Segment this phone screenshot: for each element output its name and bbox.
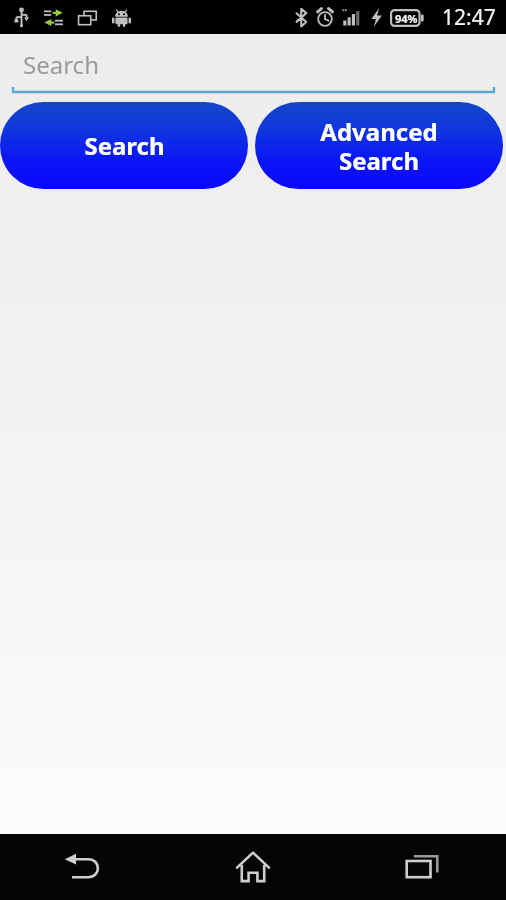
staticText: 12:47 — [442, 3, 496, 32]
button[interactable]: Search — [0, 34, 506, 101]
staticText: Search — [23, 48, 99, 81]
staticText: Search — [84, 129, 165, 162]
button[interactable]: Back — [0, 834, 168, 900]
button[interactable]: Recent apps — [337, 834, 506, 900]
staticText: Advanced Search — [320, 115, 438, 177]
button[interactable]: Advanced Search — [255, 102, 503, 189]
button[interactable]: Home — [168, 834, 337, 900]
button[interactable]: Search — [0, 102, 248, 189]
staticText: 94% — [395, 11, 418, 26]
